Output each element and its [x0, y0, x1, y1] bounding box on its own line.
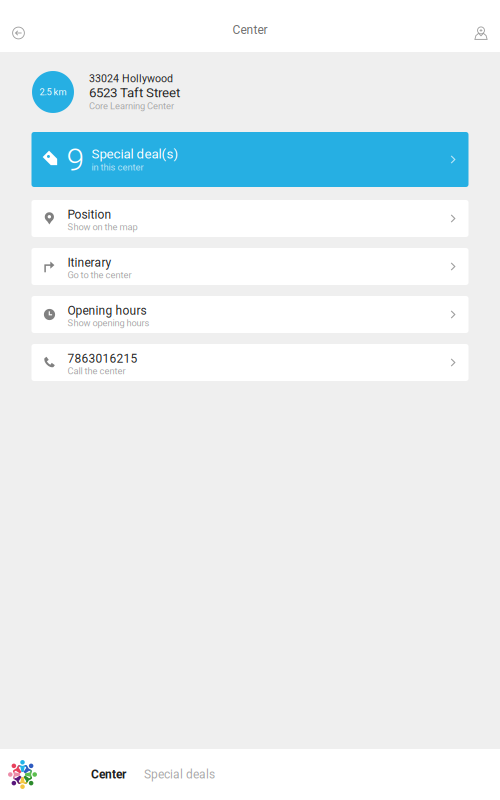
staticText: Center [91, 767, 126, 782]
button[interactable]: Back [0, 14, 37, 52]
staticText: 9 [66, 141, 84, 178]
staticText: Show on the map [67, 222, 137, 232]
staticText: Special deal(s) [91, 146, 178, 162]
staticText: Itinerary [67, 255, 111, 270]
staticText: Position [67, 207, 111, 222]
staticText: Show opening hours [67, 318, 149, 328]
staticText: Call the center [67, 366, 125, 376]
button[interactable]: Special deals [135, 751, 224, 798]
staticText: 6523 Taft Street [89, 85, 180, 101]
staticText: 2.5 km [39, 86, 66, 97]
staticText: Core Learning Center [89, 101, 174, 111]
staticText: in this center [91, 162, 143, 173]
staticText: Go to the center [67, 270, 131, 280]
button[interactable]: Call 7863016215 [31, 344, 468, 381]
staticText: Center [232, 23, 267, 37]
button[interactable]: 9 Special deals in this center [31, 132, 468, 187]
button[interactable]: Center [82, 751, 135, 798]
staticText: 33024 Hollywood [89, 72, 173, 85]
button[interactable]: Position [31, 200, 468, 237]
staticText: Opening hours [67, 303, 146, 318]
button[interactable]: Opening hours [31, 296, 468, 333]
staticText: Special deals [144, 767, 215, 782]
button[interactable]: Account [462, 14, 500, 52]
staticText: 7863016215 [67, 351, 137, 366]
button[interactable]: Itinerary [31, 248, 468, 285]
